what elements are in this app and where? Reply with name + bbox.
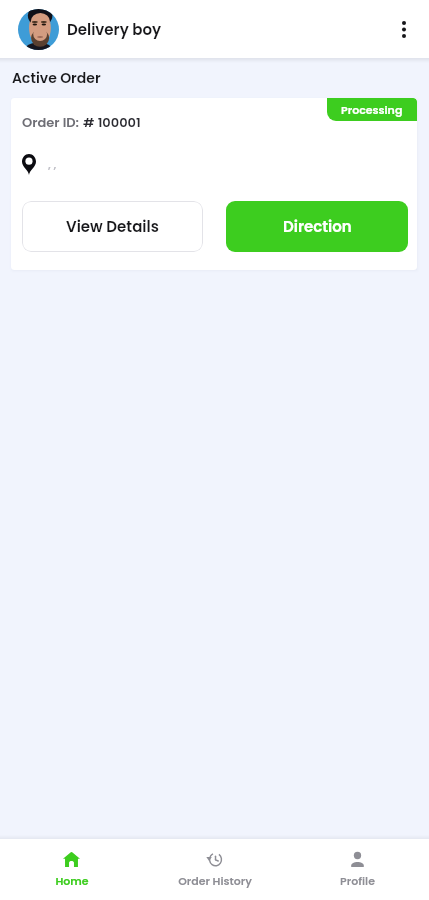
staticText: Profile (340, 873, 375, 888)
staticText: Processing (341, 102, 403, 117)
staticText: Direction (283, 216, 352, 237)
button[interactable]: Direction (226, 201, 408, 252)
button[interactable]: Order History (143, 839, 286, 900)
button[interactable]: Profile (286, 839, 429, 900)
staticText: Order History (178, 873, 252, 888)
button[interactable]: Profile photo (18, 9, 59, 50)
staticText: View Details (66, 216, 159, 237)
button[interactable]: Home (0, 839, 143, 900)
staticText: Delivery boy (67, 19, 162, 40)
button[interactable]: Processing (327, 98, 417, 121)
staticText: Home (55, 873, 89, 888)
staticText: , , (48, 157, 57, 172)
staticText: Order ID: (22, 113, 83, 131)
button[interactable]: View Details (22, 201, 203, 252)
staticText: Active Order (12, 68, 101, 88)
button[interactable]: More options (384, 9, 424, 49)
staticText: # 100001 (83, 113, 141, 131)
